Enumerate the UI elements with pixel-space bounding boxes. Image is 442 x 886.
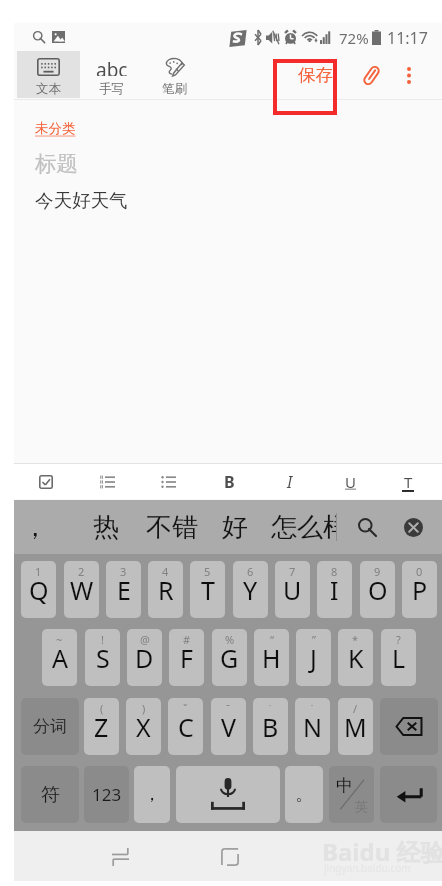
button[interactable]: 4 <box>148 561 183 618</box>
staticText: / <box>353 701 358 716</box>
button[interactable]: abc <box>80 51 143 98</box>
staticText: 5 <box>204 564 211 579</box>
staticText: T <box>201 573 215 607</box>
button[interactable]: Image <box>47 26 69 48</box>
staticText: Q <box>29 573 49 607</box>
button[interactable]: 好 <box>222 500 248 554</box>
button[interactable]: 123 <box>84 766 129 823</box>
staticText: ( <box>100 701 104 716</box>
button[interactable]: Bulleted list <box>147 464 189 499</box>
button[interactable]: Close <box>393 500 433 554</box>
staticText: ˉ <box>226 701 231 716</box>
staticText: Z <box>94 710 109 744</box>
button[interactable]: ? <box>381 629 416 686</box>
button[interactable]: 未分类 <box>35 120 76 137</box>
button[interactable]: Chinese English toggle <box>329 766 374 823</box>
button[interactable]: Enter <box>380 766 437 823</box>
staticText: ! <box>101 632 104 647</box>
button[interactable]: 符 <box>21 766 79 823</box>
button[interactable]: 分词 <box>21 698 79 755</box>
button[interactable]: * <box>338 629 373 686</box>
staticText: Y <box>243 573 258 607</box>
staticText: Baidu 经验 <box>322 835 442 868</box>
button[interactable]: ~ <box>42 629 77 686</box>
button[interactable]: Underline <box>329 464 371 499</box>
staticText: 0 <box>416 564 423 579</box>
staticText: F <box>180 641 193 675</box>
button[interactable]: Back <box>304 839 348 875</box>
staticText: 7 <box>289 564 296 579</box>
staticText: 11:17 <box>387 27 428 49</box>
button[interactable]: Checklist <box>25 464 67 499</box>
button[interactable]: 。 <box>285 766 323 823</box>
staticText: H <box>262 641 281 675</box>
button[interactable]: ˉ <box>211 698 246 755</box>
button[interactable]: # <box>169 629 204 686</box>
staticText: 好 <box>222 511 248 544</box>
button[interactable]: ” <box>296 629 331 686</box>
button[interactable]: Bold <box>208 464 250 499</box>
button[interactable]: Italic <box>269 464 311 499</box>
staticText: 手写 <box>99 81 124 97</box>
staticText: 8 <box>331 564 338 579</box>
button[interactable]: ， <box>134 766 170 823</box>
button[interactable]: 热 <box>93 500 119 554</box>
button[interactable]: Space <box>176 766 280 823</box>
staticText: 怎么样 <box>271 511 336 544</box>
staticText: “ <box>270 632 274 647</box>
button[interactable]: 9 <box>360 561 395 618</box>
button[interactable]: ˇ <box>168 698 203 755</box>
staticText: 文本 <box>36 81 61 97</box>
button[interactable]: Search <box>347 500 387 554</box>
button[interactable]: 6 <box>233 561 268 618</box>
staticText: % <box>225 632 235 647</box>
button[interactable]: ˙ <box>295 698 330 755</box>
staticText: D <box>135 641 154 675</box>
staticText: B <box>262 710 279 744</box>
button[interactable]: 3 <box>106 561 141 618</box>
staticText: 符 <box>41 783 60 807</box>
button[interactable]: Numbered list <box>86 464 128 499</box>
button[interactable]: ， <box>22 500 48 554</box>
button[interactable]: 保存 <box>291 57 339 93</box>
staticText: 笔刷 <box>162 81 187 97</box>
button[interactable]: 文本 <box>17 51 80 98</box>
button[interactable]: 8 <box>317 561 352 618</box>
button[interactable]: More options <box>393 57 425 93</box>
staticText: 分词 <box>33 716 67 737</box>
staticText: ˙ <box>269 701 272 716</box>
staticText: 9 <box>374 564 381 579</box>
button[interactable]: 5 <box>190 561 225 618</box>
staticText: 今天好天气 <box>35 189 128 212</box>
button[interactable]: ! <box>85 629 120 686</box>
staticText: W <box>70 573 94 607</box>
button[interactable]: / <box>338 698 373 755</box>
button[interactable]: Home <box>208 839 252 875</box>
button[interactable]: 不错 <box>146 500 198 554</box>
button[interactable]: Search <box>28 26 50 48</box>
button[interactable]: “ <box>254 629 289 686</box>
staticText: 4 <box>162 564 169 579</box>
button[interactable]: Attach <box>353 57 389 93</box>
button[interactable]: ˙ <box>253 698 288 755</box>
button[interactable]: 怎么样 <box>271 500 336 554</box>
button[interactable]: @ <box>127 629 162 686</box>
button[interactable]: Text color <box>387 464 429 499</box>
button[interactable]: 笔刷 <box>143 51 206 98</box>
button[interactable]: % <box>212 629 247 686</box>
button[interactable]: 0 <box>402 561 437 618</box>
staticText: 1 <box>35 564 42 579</box>
staticText: ˇ <box>183 701 188 716</box>
button[interactable]: ( <box>84 698 119 755</box>
button[interactable]: 7 <box>275 561 310 618</box>
staticText: I <box>287 471 293 493</box>
staticText: 72% <box>339 28 369 48</box>
button[interactable]: ) <box>126 698 161 755</box>
staticText: E <box>117 573 131 607</box>
button[interactable]: 2 <box>64 561 99 618</box>
button[interactable]: Recent apps <box>99 839 141 875</box>
staticText: R <box>158 573 174 607</box>
staticText: 3 <box>120 564 127 579</box>
button[interactable]: Backspace <box>380 698 438 755</box>
button[interactable]: 1 <box>21 561 56 618</box>
